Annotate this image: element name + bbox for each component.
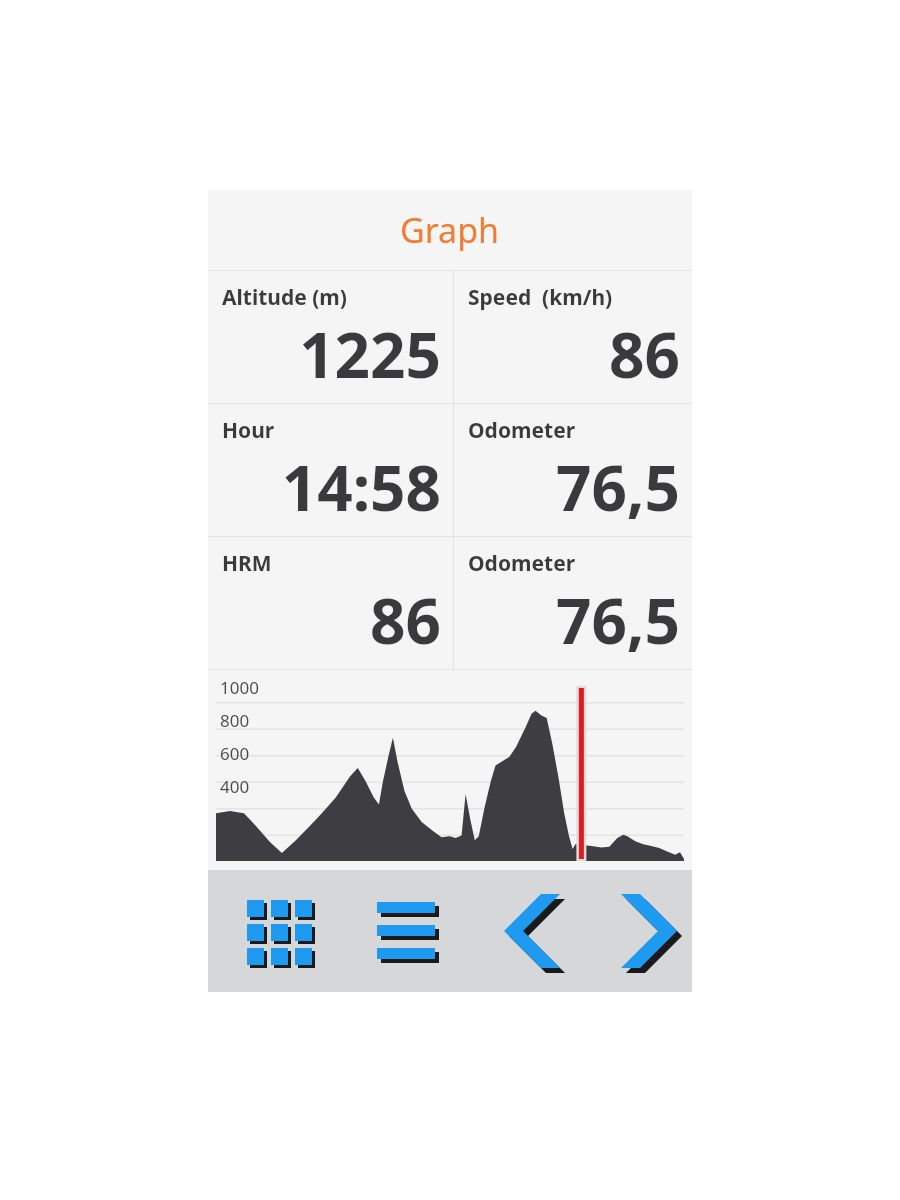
- button[interactable]: HRM: [208, 537, 453, 669]
- button[interactable]: Speed (km/h): [454, 271, 692, 403]
- button[interactable]: Odometer: [454, 404, 692, 536]
- staticText: Hour: [222, 416, 275, 445]
- staticText: 1225: [299, 312, 441, 396]
- staticText: 76,5: [555, 578, 680, 662]
- button[interactable]: Previous: [482, 881, 582, 981]
- button[interactable]: Hour: [208, 404, 453, 536]
- staticText: 400: [220, 775, 250, 798]
- staticText: Speed (km/h): [468, 283, 613, 312]
- staticText: 86: [609, 312, 680, 396]
- staticText: 1000: [220, 676, 259, 699]
- button[interactable]: Altitude (m): [208, 271, 453, 403]
- button[interactable]: Menu: [358, 881, 458, 981]
- staticText: Odometer: [468, 549, 576, 578]
- button[interactable]: Apps grid: [230, 881, 330, 981]
- staticText: HRM: [222, 549, 272, 578]
- staticText: Altitude (m): [222, 283, 347, 312]
- staticText: Odometer: [468, 416, 576, 445]
- staticText: 86: [370, 578, 441, 662]
- staticText: 76,5: [555, 445, 680, 529]
- staticText: Graph: [400, 207, 500, 253]
- staticText: 14:58: [281, 445, 441, 529]
- button[interactable]: Next: [606, 881, 692, 981]
- button[interactable]: Graph: [208, 190, 692, 270]
- button[interactable]: Odometer: [454, 537, 692, 669]
- staticText: 600: [220, 742, 250, 765]
- staticText: 800: [220, 709, 250, 732]
- button[interactable]: 1000: [208, 670, 692, 870]
